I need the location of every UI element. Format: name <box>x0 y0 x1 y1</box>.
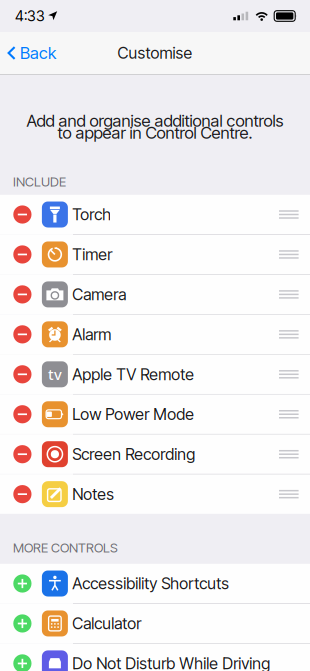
button[interactable]: Low Power Mode <box>0 395 310 434</box>
staticText: Calculator <box>72 614 141 633</box>
button[interactable]: Accessibility Shortcuts <box>0 564 310 603</box>
button[interactable]: Screen Recording <box>0 434 310 474</box>
staticText: Alarm <box>72 325 111 344</box>
staticText: Notes <box>72 484 114 504</box>
button[interactable]: Timer <box>0 235 310 274</box>
staticText: Customise <box>117 43 192 63</box>
staticText: Do Not Disturb While Driving <box>72 654 270 671</box>
staticText: Timer <box>72 245 112 264</box>
button[interactable]: Notes <box>0 474 310 514</box>
staticText: to appear in Control Centre. <box>57 123 252 143</box>
button[interactable]: Camera <box>0 275 310 314</box>
staticText: 4:33 <box>15 7 45 25</box>
staticText: Back <box>20 43 56 63</box>
button[interactable]: Do Not Disturb While Driving <box>0 644 310 671</box>
staticText: INCLUDE <box>13 174 66 190</box>
button[interactable]: Alarm <box>0 315 310 354</box>
staticText: Apple TV Remote <box>72 365 194 384</box>
staticText: Camera <box>72 285 126 304</box>
staticText: Screen Recording <box>72 444 195 464</box>
button[interactable]: tv <box>0 355 310 394</box>
button[interactable]: Torch <box>0 195 310 234</box>
button[interactable]: Back <box>0 36 64 70</box>
staticText: MORE CONTROLS <box>13 540 118 556</box>
staticText: Add and organise additional controls <box>26 110 283 131</box>
staticText: tv <box>48 365 62 384</box>
button[interactable]: Calculator <box>0 604 310 643</box>
staticText: Low Power Mode <box>72 405 194 424</box>
staticText: Accessibility Shortcuts <box>72 574 229 593</box>
staticText: Torch <box>72 205 111 224</box>
